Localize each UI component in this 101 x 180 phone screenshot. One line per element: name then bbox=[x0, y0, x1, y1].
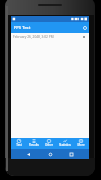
button[interactable]: Other bbox=[41, 138, 57, 147]
button[interactable]: Sort bbox=[82, 35, 86, 39]
button[interactable]: Home bbox=[46, 150, 55, 159]
staticText: Other bbox=[45, 143, 53, 147]
button[interactable]: Settings bbox=[82, 25, 87, 30]
staticText: February 26, 2048, 3:02 PM bbox=[13, 35, 54, 39]
staticText: Test bbox=[16, 143, 22, 147]
button[interactable]: Results bbox=[26, 138, 41, 147]
button[interactable]: Recent apps bbox=[67, 150, 76, 159]
button[interactable]: Statistics bbox=[57, 138, 73, 147]
button[interactable]: More bbox=[73, 138, 89, 147]
staticText: Results bbox=[29, 143, 39, 147]
button[interactable]: Test bbox=[11, 138, 26, 147]
staticText: FPS Test bbox=[14, 25, 31, 31]
staticText: Statistics bbox=[59, 143, 71, 147]
staticText: More bbox=[77, 143, 85, 147]
button[interactable]: Back bbox=[24, 150, 33, 159]
